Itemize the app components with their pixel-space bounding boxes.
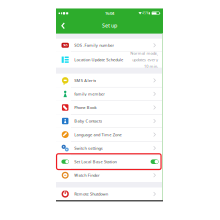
button[interactable]: Phone Book xyxy=(56,101,163,114)
staticText: family member xyxy=(74,91,105,97)
button[interactable]: SMS Alerts xyxy=(56,74,163,87)
button[interactable]: SOS xyxy=(56,39,163,52)
staticText: Switch settings xyxy=(74,145,103,151)
staticText: Location Update Schedule xyxy=(74,57,123,62)
staticText: Baby Contacts xyxy=(74,118,102,124)
staticText: 16:04 xyxy=(105,11,114,16)
staticText: SMS Alerts xyxy=(74,78,96,83)
staticText: Normal mode, xyxy=(130,50,158,56)
staticText: SOS xyxy=(63,43,67,47)
button[interactable]: Back xyxy=(58,19,68,32)
staticText: 10 min. xyxy=(144,64,158,69)
button[interactable]: Language and Time Zone xyxy=(56,128,163,141)
staticText: Remote Shutdown xyxy=(74,191,108,197)
staticText: Set up xyxy=(102,22,117,29)
button[interactable]: family member xyxy=(56,87,163,101)
button[interactable]: Watch Finder xyxy=(56,168,163,182)
button[interactable]: Location Update Schedule xyxy=(56,52,163,68)
staticText: Set Local Base Station xyxy=(74,159,116,164)
staticText: updates every xyxy=(132,57,158,62)
staticText: Phone Book xyxy=(74,105,96,110)
staticText: Language and Time Zone xyxy=(74,132,121,137)
button[interactable]: Set Local Base Station xyxy=(56,155,163,168)
button[interactable]: Switch settings xyxy=(56,141,163,155)
button[interactable]: Baby Contacts xyxy=(56,114,163,128)
button[interactable]: Remote Shutdown xyxy=(56,187,163,200)
staticText: 45% xyxy=(142,11,148,15)
staticText: SOS .Family number xyxy=(74,43,114,48)
staticText: Watch Finder xyxy=(74,173,100,178)
